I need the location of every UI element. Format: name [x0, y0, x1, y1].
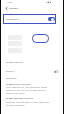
staticText: 10:08 [7, 1, 13, 4]
staticText: Description [6, 77, 17, 80]
button[interactable]: Back [4, 6, 9, 11]
button[interactable]: TalkBack settings [0, 58, 64, 66]
staticText: TalkBack gestures: unlocked [6, 97, 33, 100]
button[interactable] [32, 34, 49, 43]
staticText: When TalkBack is on, your device gives s… [6, 86, 51, 95]
button[interactable]: Shortcut [0, 67, 64, 75]
staticText: Use TalkBack [6, 18, 19, 21]
staticText: To explore, drag one finger. To move, sw… [6, 101, 51, 107]
staticText: Shortcut [6, 70, 15, 73]
button[interactable]: Use TalkBack [3, 14, 56, 24]
staticText: TalkBack settings [6, 61, 23, 64]
staticText: TalkBack status: unlocked [6, 83, 31, 86]
staticText: TalkBack [9, 7, 19, 10]
staticText: ▾ ● ▮ [46, 1, 51, 4]
